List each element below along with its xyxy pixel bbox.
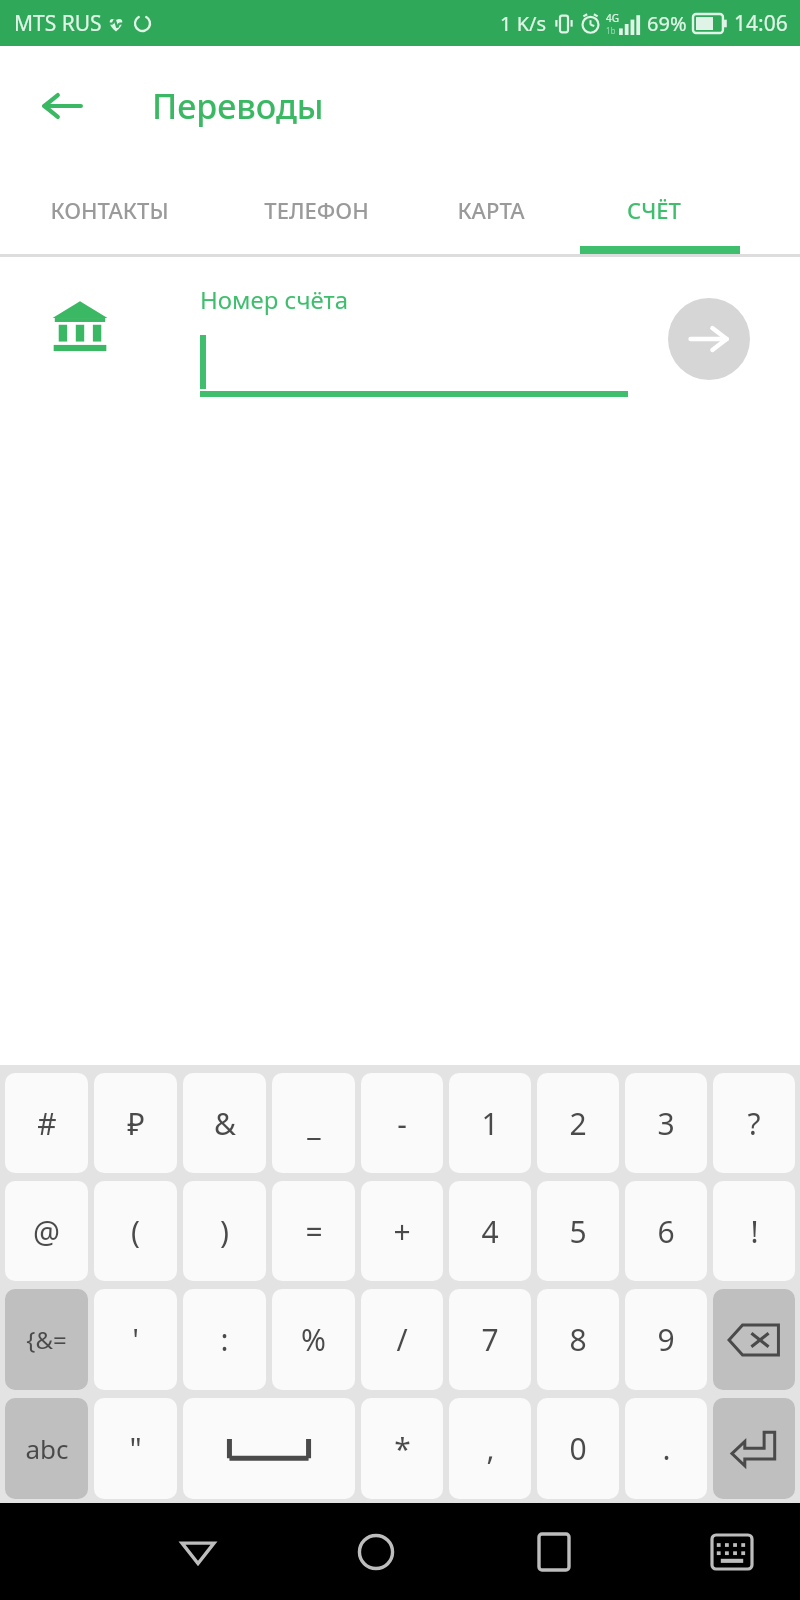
button[interactable]: 8	[537, 1289, 619, 1390]
button[interactable]: Continue	[668, 298, 750, 380]
button[interactable]: Hide keyboard	[684, 1504, 780, 1600]
staticText: ₽	[127, 1103, 145, 1144]
staticText: /	[396, 1319, 408, 1360]
button[interactable]: )	[183, 1181, 266, 1281]
staticText: 9	[657, 1319, 675, 1360]
button[interactable]: Back	[150, 1504, 246, 1600]
staticText: 1	[481, 1103, 499, 1144]
staticText: 1b	[606, 25, 616, 36]
staticText: "	[129, 1428, 142, 1469]
button[interactable]: %	[272, 1289, 355, 1390]
staticText: КОНТАКТЫ	[50, 195, 169, 225]
staticText: &	[214, 1103, 236, 1144]
staticText: 14:06	[734, 9, 788, 38]
staticText: 0	[569, 1428, 587, 1469]
button[interactable]: Space	[183, 1398, 355, 1499]
button[interactable]: КОНТАКТЫ	[0, 166, 218, 254]
staticText: @	[33, 1211, 60, 1252]
staticText: .	[662, 1428, 671, 1469]
button[interactable]: &	[183, 1073, 266, 1173]
staticText: ТЕЛЕФОН	[264, 195, 369, 225]
button[interactable]: 9	[625, 1289, 707, 1390]
button[interactable]: КАРТА	[414, 166, 568, 254]
button[interactable]: Backspace	[713, 1289, 795, 1390]
button[interactable]: 6	[625, 1181, 707, 1281]
staticText: 8	[569, 1319, 587, 1360]
staticText: 3	[657, 1103, 675, 1144]
staticText: 4G	[606, 11, 619, 25]
staticText: !	[750, 1211, 759, 1252]
staticText: Переводы	[152, 83, 324, 129]
button[interactable]: 1	[449, 1073, 531, 1173]
button[interactable]: {&=	[5, 1289, 88, 1390]
staticText: #	[37, 1103, 57, 1144]
staticText: -	[397, 1103, 407, 1144]
staticText: (	[131, 1211, 140, 1252]
staticText: *	[394, 1428, 411, 1469]
button[interactable]: #	[5, 1073, 88, 1173]
button[interactable]: ?	[713, 1073, 795, 1173]
button[interactable]: (	[94, 1181, 177, 1281]
button[interactable]: !	[713, 1181, 795, 1281]
button[interactable]: '	[94, 1289, 177, 1390]
staticText: 69%	[647, 10, 687, 37]
button[interactable]: Back	[28, 72, 96, 140]
button[interactable]: 4	[449, 1181, 531, 1281]
staticText: ,	[486, 1428, 495, 1469]
staticText: Номер счёта	[200, 283, 349, 316]
button[interactable]: 3	[625, 1073, 707, 1173]
staticText: )	[220, 1211, 229, 1252]
button[interactable]: Recents	[506, 1504, 602, 1600]
button[interactable]: Home	[328, 1504, 424, 1600]
button[interactable]: *	[361, 1398, 443, 1499]
button[interactable]: 0	[537, 1398, 619, 1499]
button[interactable]: =	[272, 1181, 355, 1281]
staticText: _	[307, 1103, 321, 1144]
staticText: '	[132, 1319, 139, 1360]
button[interactable]: СЧЁТ	[568, 166, 740, 254]
button[interactable]: Enter	[713, 1398, 795, 1499]
button[interactable]: /	[361, 1289, 443, 1390]
staticText: %	[301, 1319, 326, 1360]
staticText: abc	[25, 1431, 69, 1466]
staticText: =	[305, 1211, 323, 1252]
staticText: СЧЁТ	[627, 195, 681, 225]
button[interactable]: +	[361, 1181, 443, 1281]
button[interactable]: ТЕЛЕФОН	[218, 166, 414, 254]
button[interactable]: "	[94, 1398, 177, 1499]
button[interactable]: ₽	[94, 1073, 177, 1173]
staticText: :	[220, 1319, 229, 1360]
staticText: 1 K/s	[500, 10, 547, 37]
button[interactable]: 7	[449, 1289, 531, 1390]
button[interactable]: @	[5, 1181, 88, 1281]
button[interactable]: 5	[537, 1181, 619, 1281]
staticText: MTS RUS	[14, 9, 102, 38]
staticText: 5	[569, 1211, 587, 1252]
staticText: 2	[569, 1103, 587, 1144]
button[interactable]: -	[361, 1073, 443, 1173]
staticText: {&=	[26, 1323, 67, 1356]
staticText: +	[393, 1211, 411, 1252]
staticText: 4	[481, 1211, 499, 1252]
button[interactable]: 2	[537, 1073, 619, 1173]
button[interactable]: ,	[449, 1398, 531, 1499]
staticText: 6	[657, 1211, 675, 1252]
button[interactable]: :	[183, 1289, 266, 1390]
button[interactable]: abc	[5, 1398, 88, 1499]
button[interactable]: _	[272, 1073, 355, 1173]
other: Bank	[52, 299, 108, 355]
staticText: 7	[481, 1319, 499, 1360]
staticText: КАРТА	[457, 195, 525, 225]
button[interactable]: .	[625, 1398, 707, 1499]
staticText: ?	[747, 1103, 761, 1144]
